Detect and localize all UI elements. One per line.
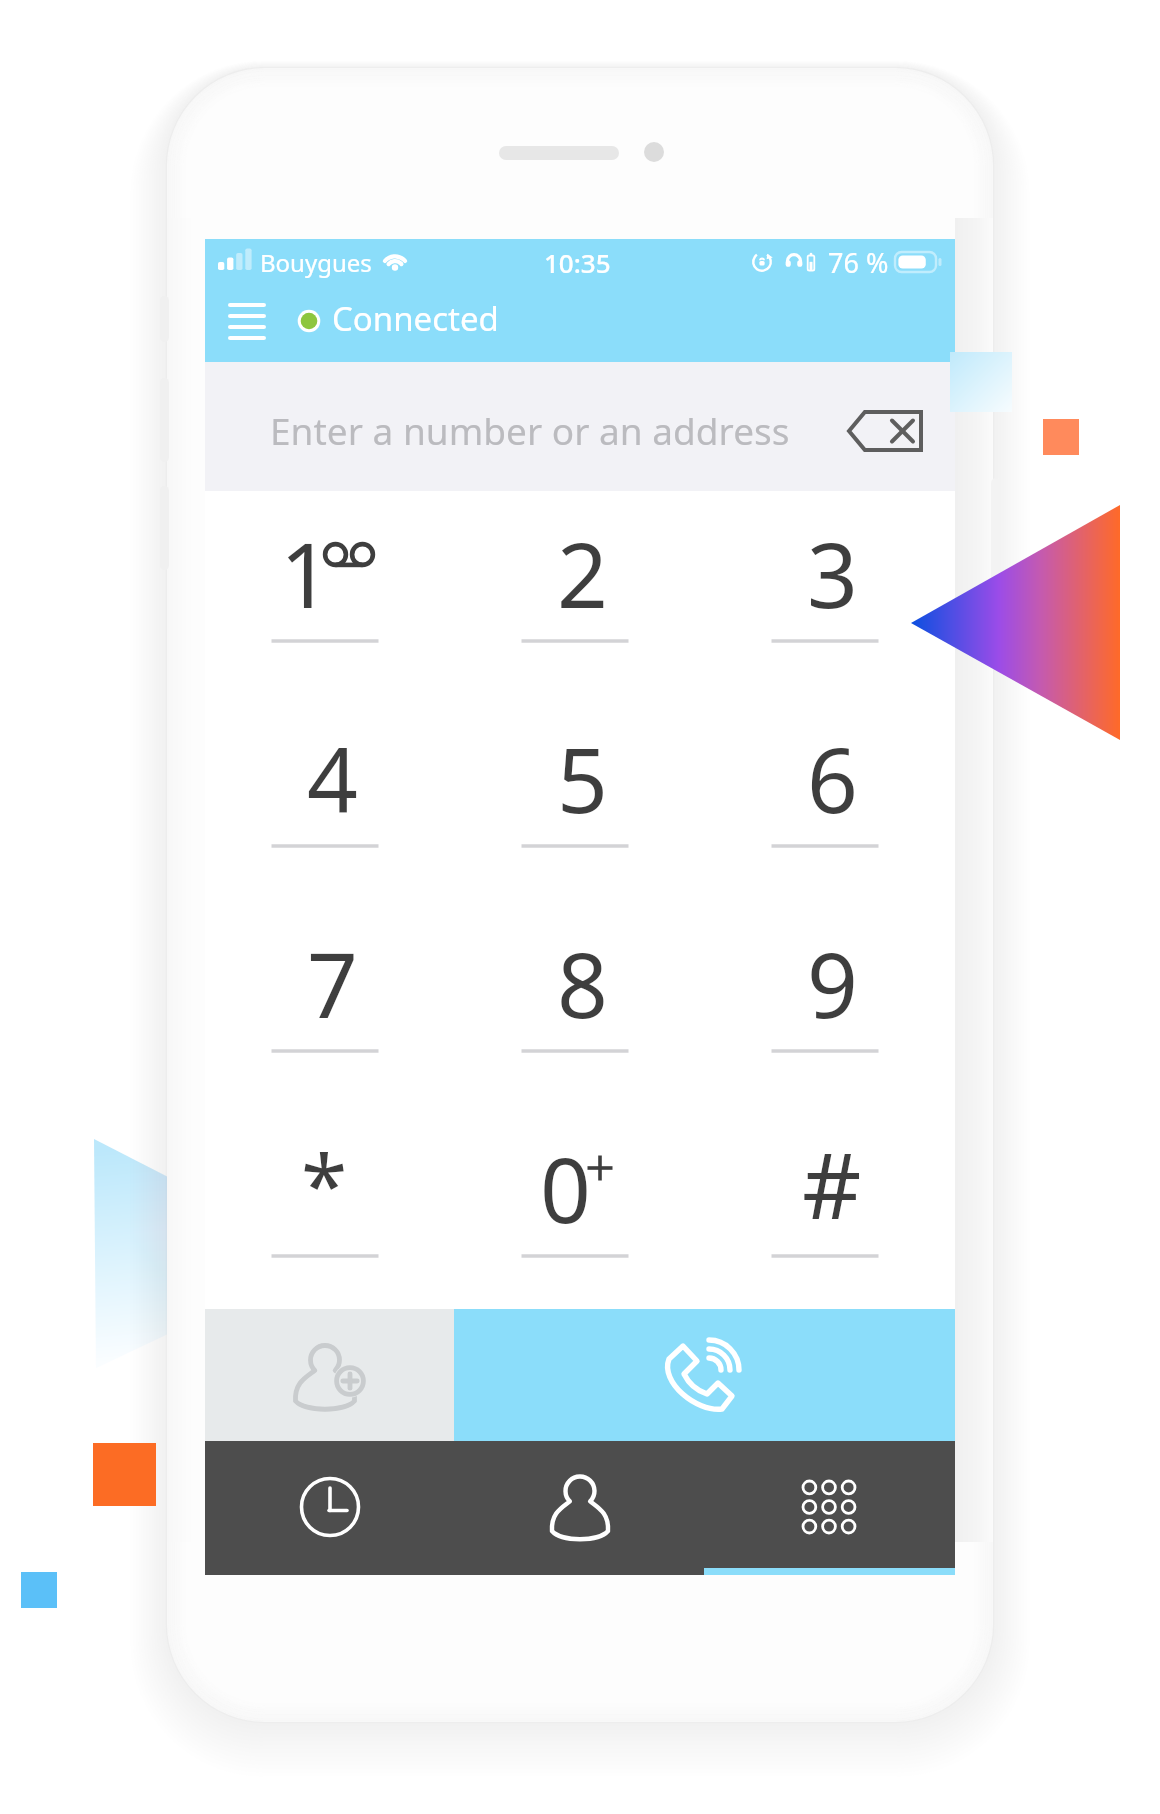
button[interactable]: # <box>705 1106 955 1309</box>
button[interactable]: 8 <box>455 901 705 1106</box>
staticText: Connected <box>332 296 499 341</box>
staticText: 4 <box>307 718 358 839</box>
staticText: 7 <box>307 923 358 1044</box>
staticText: Bouygues <box>260 246 372 279</box>
button[interactable]: Keypad <box>705 1441 955 1575</box>
button[interactable]: 2 <box>455 491 705 696</box>
button[interactable]: 3 <box>705 491 955 696</box>
staticText: 5 <box>557 718 608 839</box>
button[interactable]: 7 <box>205 901 455 1106</box>
staticText: # <box>802 1121 862 1246</box>
staticText: 10:35 <box>544 245 611 280</box>
button[interactable]: Backspace <box>834 394 936 468</box>
staticText: 6 <box>807 718 858 839</box>
button[interactable]: Contacts <box>455 1441 705 1575</box>
button[interactable]: Add contact <box>205 1309 454 1441</box>
button[interactable]: 5 <box>455 696 705 901</box>
staticText: Enter a number or an address <box>270 405 790 455</box>
staticText: 9 <box>807 923 858 1044</box>
button[interactable]: Menu <box>205 285 289 362</box>
button[interactable]: Call <box>454 1309 955 1441</box>
staticText: 2 <box>557 513 608 634</box>
staticText: 8 <box>557 923 608 1044</box>
button[interactable]: Enter a number or an address <box>205 362 955 491</box>
button[interactable]: 6 <box>705 696 955 901</box>
button[interactable]: 0 <box>455 1106 705 1309</box>
staticText: 1 <box>280 513 331 634</box>
button[interactable]: 4 <box>205 696 455 901</box>
button[interactable]: 9 <box>705 901 955 1106</box>
staticText: * <box>301 1126 348 1240</box>
staticText: 76 % <box>828 244 889 281</box>
staticText: 0 <box>540 1128 591 1249</box>
button[interactable]: Recent calls <box>205 1441 455 1575</box>
button[interactable]: 1 <box>205 491 455 696</box>
staticText: 3 <box>807 513 858 634</box>
button[interactable]: * <box>205 1106 455 1309</box>
